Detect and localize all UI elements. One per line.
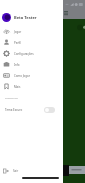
button[interactable]: Open navigation menu [64, 11, 68, 15]
button[interactable]: Perfil [0, 37, 63, 48]
staticText: Jogar [14, 30, 22, 34]
button[interactable]: Sair [0, 166, 63, 176]
button[interactable]: Jogar [0, 26, 63, 37]
button[interactable]: Info [0, 59, 63, 70]
button[interactable]: Mais [0, 81, 63, 92]
staticText: Mais [14, 85, 21, 89]
button[interactable]: Como Jogar [0, 70, 63, 81]
button[interactable]: Configurações [0, 48, 63, 59]
button[interactable]: Beta Tester [0, 12, 63, 22]
staticText: Info [14, 63, 20, 67]
button[interactable]: Tema Escuro [0, 104, 63, 115]
staticText: Perfil [14, 41, 22, 45]
staticText: Sair [13, 169, 19, 173]
staticText: Tema Escuro [5, 108, 23, 112]
staticText: Como Jogar [14, 74, 30, 78]
button[interactable] [69, 166, 85, 174]
staticText: Preferências [5, 97, 18, 100]
staticText: Beta Tester [14, 15, 37, 20]
staticText: Configurações [14, 52, 34, 56]
